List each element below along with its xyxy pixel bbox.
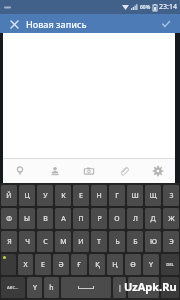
staticText: ABC... [7,285,19,290]
staticText: С [43,237,48,247]
staticText: Ч [25,237,30,247]
button[interactable]: Ь [109,231,125,252]
staticText: Ө [130,260,136,270]
button[interactable]: Ү [143,254,159,275]
button[interactable]: З [163,185,179,206]
staticText: Ц [24,191,30,201]
staticText: Л [133,214,138,224]
button[interactable]: Й [1,185,17,206]
button[interactable]: Settings [145,158,171,183]
staticText: UzApk.Ru [124,279,177,294]
button[interactable]: Delete [161,254,179,275]
staticText: Ү [149,260,153,270]
staticText: Ю [150,237,157,247]
staticText: Қ [95,260,100,270]
button[interactable]: П [73,208,89,229]
staticText: М [60,237,67,247]
button[interactable]: Ф [1,208,17,229]
staticText: | [118,283,122,293]
staticText: А [61,214,66,224]
staticText: Ь [115,237,120,247]
staticText: Е [41,260,45,270]
staticText: П [78,214,84,224]
staticText: Щ [149,191,157,201]
staticText: Б [133,237,138,247]
button[interactable]: Ж [163,208,179,229]
button[interactable]: Enter [161,277,179,298]
button[interactable]: Ө [125,254,141,275]
staticText: Н [96,191,102,201]
staticText: Я [7,237,12,247]
staticText: Й [6,191,12,201]
staticText: З [169,191,174,201]
button[interactable]: Ң [107,254,123,275]
button[interactable]: Ц [19,185,35,206]
staticText: Т [97,237,101,247]
button[interactable]: В [37,208,53,229]
button[interactable]: Е [73,185,89,206]
button[interactable]: Ы [19,208,35,229]
staticText: 60% [140,4,151,11]
staticText: Х [23,260,28,270]
staticText: Э [169,237,174,247]
staticText: У [43,191,48,201]
button[interactable]: һ [44,277,59,298]
button[interactable]: Location [7,158,33,183]
button[interactable]: Ү [27,277,42,298]
button[interactable]: Ш [127,185,143,206]
button[interactable]: Э [163,231,179,252]
button[interactable]: С [37,231,53,252]
button[interactable]: Б [127,231,143,252]
button[interactable]: Қ [89,254,105,275]
staticText: Е [79,191,83,201]
button[interactable]: Ә [53,254,69,275]
staticText: һ [49,283,54,293]
staticText: Р [97,214,102,224]
button[interactable]: У [37,185,53,206]
button[interactable]: Add person [42,158,68,183]
staticText: Ш [131,191,139,201]
button[interactable]: ABC... [1,277,25,298]
button[interactable]: Ю [145,231,161,252]
button[interactable]: Attach file [111,158,137,183]
button[interactable]: Л [127,208,143,229]
button[interactable]: Е [35,254,51,275]
button[interactable]: Close [6,16,22,32]
button[interactable]: Р [91,208,107,229]
staticText: Ү [33,283,37,293]
staticText: Новая запись [26,18,87,30]
staticText: 23:14 [159,2,177,12]
button[interactable]: М [55,231,71,252]
button[interactable]: Camera [76,158,102,183]
staticText: О [114,214,120,224]
button[interactable]: Switch language [1,254,16,275]
staticText: DEL [166,262,174,267]
button[interactable]: Space [61,277,111,298]
staticText: Д [150,214,156,224]
staticText: Ң [112,260,118,270]
button[interactable]: К [55,185,71,206]
staticText: Ж [168,214,175,224]
staticText: В [43,214,48,224]
button[interactable]: И [73,231,89,252]
button[interactable]: Д [145,208,161,229]
button[interactable]: Н [91,185,107,206]
button[interactable]: Я [1,231,17,252]
button[interactable]: Щ [145,185,161,206]
button[interactable]: | [113,277,126,298]
button[interactable]: Ч [19,231,35,252]
button[interactable]: Г [109,185,125,206]
staticText: И [78,237,84,247]
button[interactable]: О [109,208,125,229]
staticText: Ғ [77,260,81,270]
staticText: Ә [58,260,64,270]
staticText: Ы [24,214,30,224]
button[interactable]: А [55,208,71,229]
staticText: К [61,191,66,201]
button[interactable]: Х [18,254,33,275]
button[interactable]: Save [158,16,174,32]
button[interactable]: Ғ [71,254,87,275]
staticText: Г [115,191,119,201]
button[interactable]: Т [91,231,107,252]
